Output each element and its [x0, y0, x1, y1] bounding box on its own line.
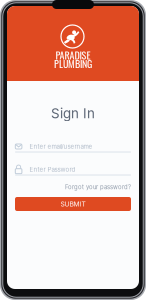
staticText: PLUMBING: [54, 56, 92, 71]
button[interactable]: SUBMIT: [15, 197, 131, 211]
staticText: Enter email/username: [29, 143, 92, 150]
staticText: SUBMIT: [60, 200, 85, 208]
staticText: PARADISE: [55, 48, 90, 62]
staticText: Enter Password: [29, 166, 75, 173]
staticText: Forgot your password?: [65, 183, 131, 191]
button[interactable]: Forgot your password?: [61, 181, 131, 193]
staticText: Sign In: [51, 105, 95, 121]
